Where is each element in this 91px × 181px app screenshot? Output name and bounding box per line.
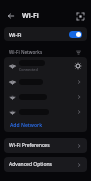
- button[interactable]: Wi-Fi Preferences: [4, 138, 87, 153]
- button[interactable]: Wi-Fi: [4, 27, 87, 41]
- button[interactable]: Advanced Options: [4, 157, 87, 172]
- button[interactable]: Sort networks: [74, 48, 82, 56]
- button[interactable]: Scan QR code: [74, 10, 86, 22]
- button[interactable]: [4, 89, 87, 104]
- button[interactable]: [4, 74, 87, 89]
- staticText: Add Network: [10, 122, 43, 129]
- staticText: Advanced Options: [9, 161, 52, 168]
- button[interactable]: Connected: [4, 57, 87, 74]
- button[interactable]: Add Network: [4, 119, 87, 132]
- staticText: Wi-Fi Networks: [9, 49, 43, 55]
- button[interactable]: Back: [5, 10, 17, 22]
- staticText: Wi-Fi Preferences: [9, 142, 50, 149]
- button[interactable]: [4, 104, 87, 119]
- button[interactable]: Network settings: [73, 61, 82, 70]
- staticText: Wi-Fi: [9, 31, 22, 38]
- staticText: Connected: [19, 67, 38, 72]
- staticText: Wi-Fi: [22, 11, 39, 21]
